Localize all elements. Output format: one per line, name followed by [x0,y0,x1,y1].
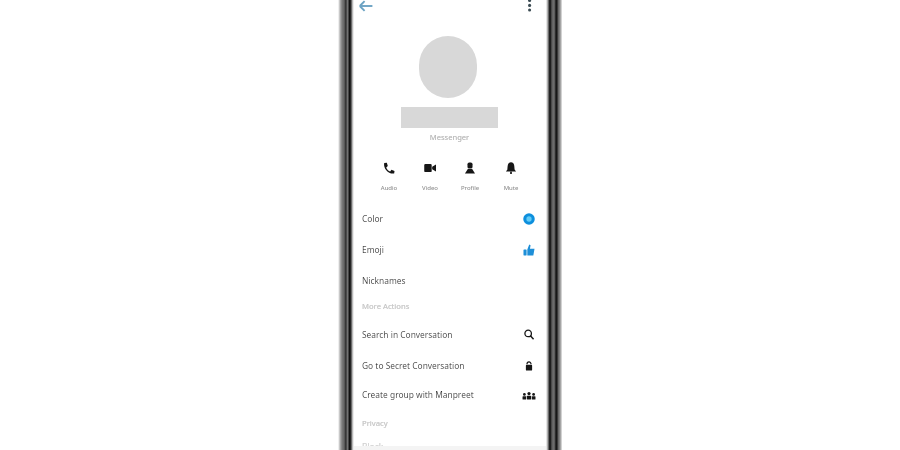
button[interactable]: Block [352,441,547,450]
staticText: Emoji [362,244,384,255]
button[interactable]: Mute [491,155,531,192]
button[interactable]: Emoji [352,237,547,262]
button[interactable]: Audio [369,155,409,192]
button[interactable]: Back [352,0,378,19]
staticText: More Actions [362,301,410,311]
staticText: Create group with Manpreet [362,389,474,400]
button[interactable]: Color [352,206,547,231]
staticText: Block [362,441,384,450]
button[interactable]: More options [517,0,543,20]
staticText: Audio [369,184,409,192]
staticText: Nicknames [362,275,406,286]
staticText: Search in Conversation [362,329,453,340]
button[interactable]: Search in Conversation [352,322,547,347]
staticText: Messenger [352,132,547,142]
button[interactable]: Nicknames [352,268,547,293]
staticText: Privacy [362,418,388,428]
button[interactable]: Create group with Manpreet [352,382,547,407]
staticText: Mute [491,184,531,192]
button[interactable]: Profile [450,155,490,192]
staticText: Color [362,213,384,224]
button[interactable]: Video [410,155,450,192]
staticText: Video [410,184,450,192]
staticText: Go to Secret Conversation [362,360,465,371]
staticText: Profile [450,184,490,192]
button[interactable]: Go to Secret Conversation [352,353,547,378]
